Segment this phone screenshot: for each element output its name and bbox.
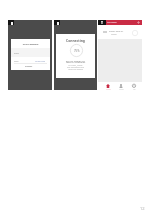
staticText: Smart Plug 01 — [109, 30, 124, 33]
staticText: Home — [106, 88, 111, 90]
staticText: SSID — [14, 52, 19, 55]
staticText: 12 — [140, 206, 145, 211]
staticText: Pwd — [14, 60, 19, 63]
staticText: Online — [111, 33, 117, 35]
staticText: CANCEL — [25, 65, 33, 68]
button[interactable]: Smart — [116, 82, 126, 90]
staticText: My Home — [107, 21, 117, 24]
staticText: wait to complete — [56, 60, 95, 63]
button[interactable]: Forget pwd — [11, 60, 46, 63]
button[interactable]: Home — [103, 82, 113, 90]
staticText: Wi-Fi Password — [11, 43, 50, 46]
staticText: Smart — [119, 88, 124, 90]
staticText: the password and — [56, 66, 95, 69]
staticText: T — [101, 20, 103, 25]
staticText: If it fails, check — [56, 64, 95, 67]
button[interactable]: Smart Plug 01 — [98, 25, 142, 39]
staticText: Forget pwd — [35, 60, 46, 63]
staticText: Connecting — [56, 38, 95, 42]
staticText: Me — [133, 88, 136, 90]
button[interactable]: Add device — [136, 20, 141, 25]
staticText: reset the device — [56, 68, 95, 71]
staticText: 75% — [74, 49, 80, 53]
staticText: - — [56, 42, 95, 45]
button[interactable]: CANCEL — [11, 63, 50, 69]
button[interactable]: App logo — [98, 20, 106, 25]
staticText: Do not power off, — [56, 59, 95, 62]
button[interactable]: Me — [129, 82, 139, 90]
